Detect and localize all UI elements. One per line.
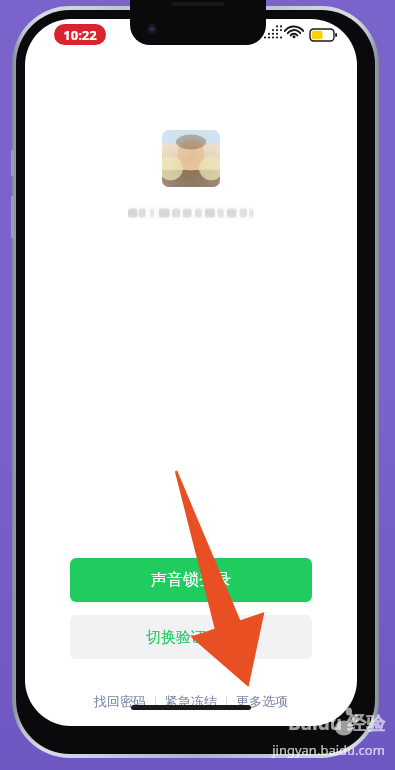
staticText: Baidu 经验 — [288, 710, 385, 736]
button[interactable]: 声音锁登录 — [70, 558, 312, 602]
button[interactable]: 切换验证方式 — [70, 615, 312, 659]
staticText: 找回密码 — [94, 693, 146, 709]
staticText: 声音锁登录 — [151, 570, 231, 590]
staticText: 10:22 — [63, 26, 97, 44]
staticText: 切换验证方式 — [146, 628, 236, 647]
button[interactable]: 紧急冻结 — [161, 690, 221, 712]
staticText: 更多选项 — [236, 693, 288, 709]
button[interactable]: 找回密码 — [90, 690, 150, 712]
staticText: jingyan.baidu.com — [272, 741, 385, 759]
staticText: 紧急冻结 — [165, 693, 217, 709]
button[interactable]: 更多选项 — [232, 690, 292, 712]
button[interactable]: Profile avatar — [162, 130, 220, 187]
